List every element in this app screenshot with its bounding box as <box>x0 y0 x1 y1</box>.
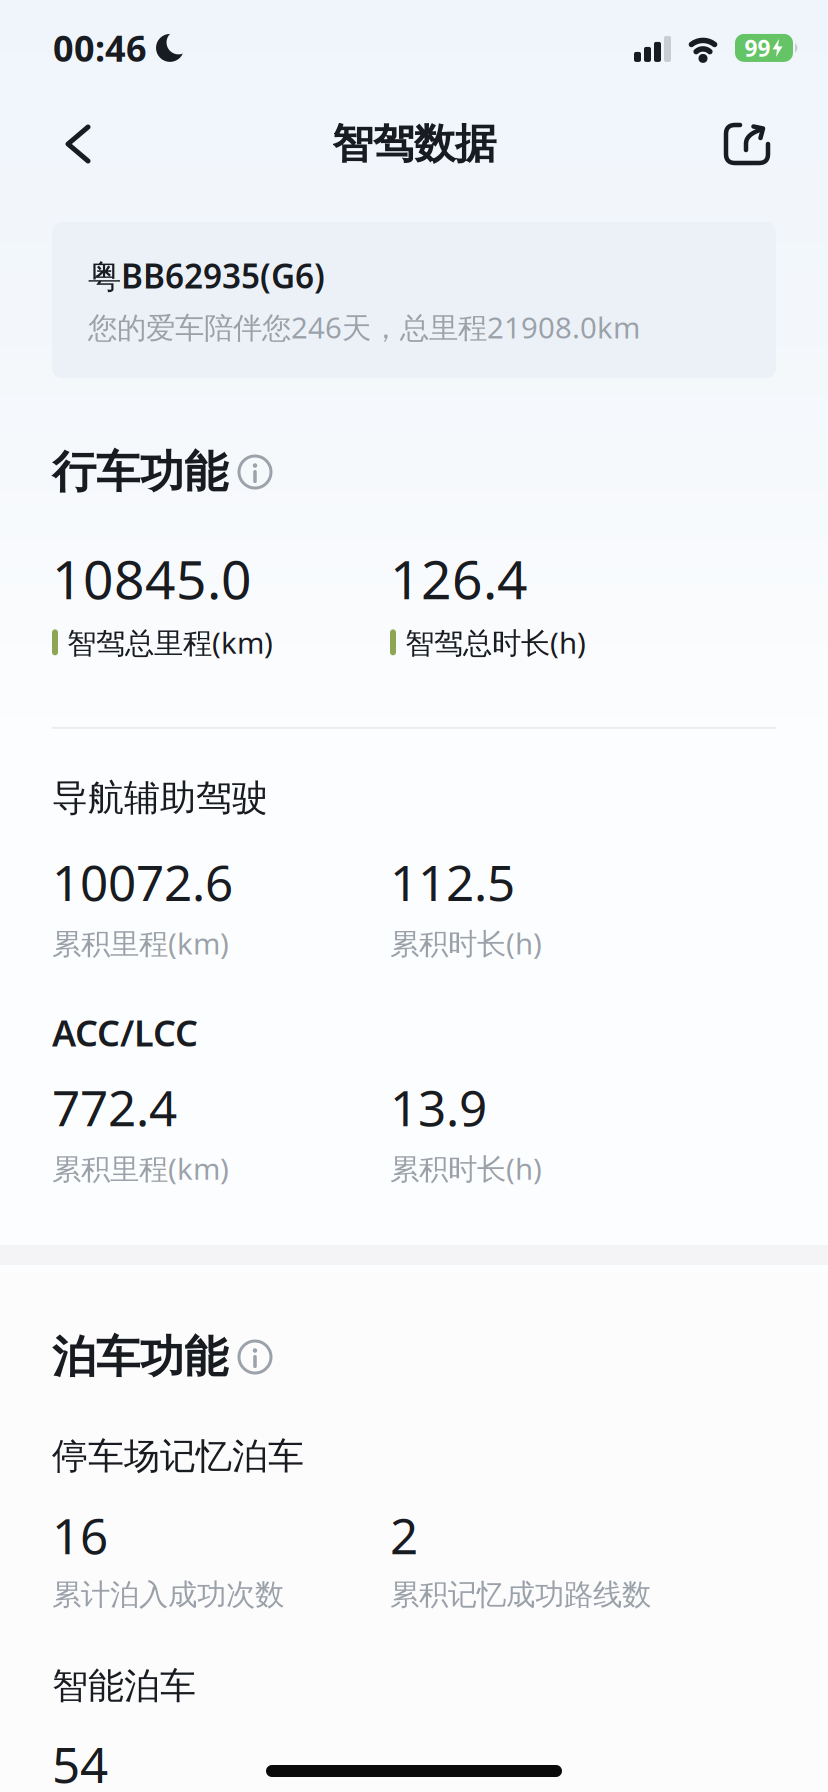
button[interactable]: Share <box>706 123 828 165</box>
staticText: 泊车功能 <box>52 1330 228 1384</box>
staticText: 772.4 <box>52 1074 177 1140</box>
staticText: 累积里程(km) <box>52 1149 229 1188</box>
staticText: 累积记忆成功路线数 <box>390 1577 651 1613</box>
staticText: 2 <box>390 1502 418 1568</box>
staticText: 停车场记忆泊车 <box>52 1434 304 1478</box>
staticText: 16 <box>52 1502 108 1568</box>
staticText: ACC/LCC <box>52 1008 198 1056</box>
button[interactable]: 行车功能说明 <box>239 456 271 488</box>
staticText: 累积里程(km) <box>52 924 229 963</box>
staticText: 10072.6 <box>52 849 233 914</box>
staticText: 导航辅助驾驶 <box>52 776 268 820</box>
staticText: 智驾总时长(h) <box>405 623 586 662</box>
staticText: 智驾总里程(km) <box>67 623 273 662</box>
staticText: 54 <box>52 1731 108 1792</box>
button[interactable]: Back <box>0 125 110 163</box>
staticText: 智驾数据 <box>332 119 496 169</box>
staticText: 累积时长(h) <box>390 924 542 963</box>
staticText: 累计泊入成功次数 <box>52 1577 284 1613</box>
staticText: 99 <box>744 33 770 63</box>
button[interactable]: 粤BB62935(G6) <box>52 222 776 378</box>
staticText: 您的爱车陪伴您246天，总里程21908.0km <box>88 308 640 347</box>
staticText: 智能泊车 <box>52 1664 196 1708</box>
staticText: 00:46 <box>53 24 147 72</box>
staticText: 126.4 <box>390 543 528 614</box>
staticText: 13.9 <box>390 1074 487 1140</box>
staticText: 粤BB62935(G6) <box>88 253 325 298</box>
staticText: 10845.0 <box>52 543 252 614</box>
staticText: 累积时长(h) <box>390 1149 542 1188</box>
staticText: 112.5 <box>390 849 515 914</box>
staticText: 行车功能 <box>52 445 228 499</box>
button[interactable]: 泊车功能说明 <box>239 1341 271 1373</box>
